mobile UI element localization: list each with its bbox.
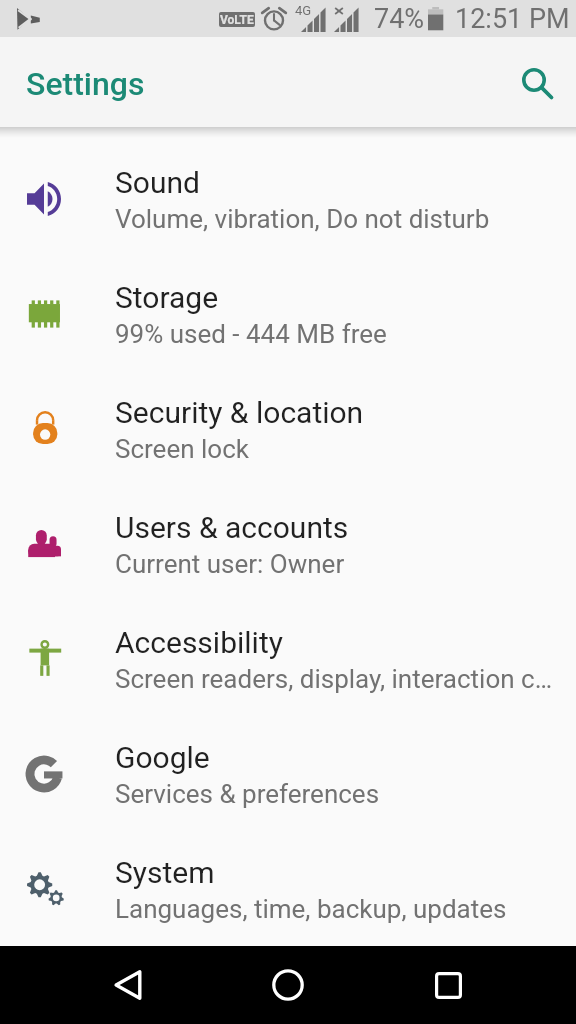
button[interactable]: Sound: [0, 141, 576, 256]
staticText: Volume, vibration, Do not disturb: [115, 204, 490, 234]
staticText: Screen lock: [115, 434, 249, 464]
staticText: Accessibility: [115, 625, 283, 660]
staticText: Security & location: [115, 395, 364, 430]
button[interactable]: Search: [509, 56, 565, 112]
staticText: Languages, time, backup, updates: [115, 894, 507, 924]
staticText: Storage: [115, 280, 219, 315]
staticText: Google: [115, 740, 210, 775]
staticText: Sound: [115, 165, 200, 200]
staticText: 74%: [374, 3, 425, 35]
button[interactable]: Recents: [420, 957, 476, 1013]
button[interactable]: Users & accounts: [0, 486, 576, 601]
staticText: Settings: [26, 65, 145, 103]
button[interactable]: Google: [0, 716, 576, 831]
staticText: Users & accounts: [115, 510, 349, 545]
staticText: Services & preferences: [115, 779, 380, 809]
button[interactable]: Home: [260, 957, 316, 1013]
staticText: Screen readers, display, interaction c…: [115, 664, 553, 694]
staticText: VoLTE: [220, 13, 254, 27]
staticText: 12:51 PM: [455, 3, 570, 35]
button[interactable]: System: [0, 831, 576, 946]
button[interactable]: Accessibility: [0, 601, 576, 716]
staticText: 4G: [295, 3, 312, 18]
button[interactable]: Security & location: [0, 371, 576, 486]
button[interactable]: Storage: [0, 256, 576, 371]
button[interactable]: Back: [101, 957, 157, 1013]
staticText: 99% used - 444 MB free: [115, 319, 387, 349]
staticText: Current user: Owner: [115, 549, 345, 579]
staticText: System: [115, 855, 215, 890]
